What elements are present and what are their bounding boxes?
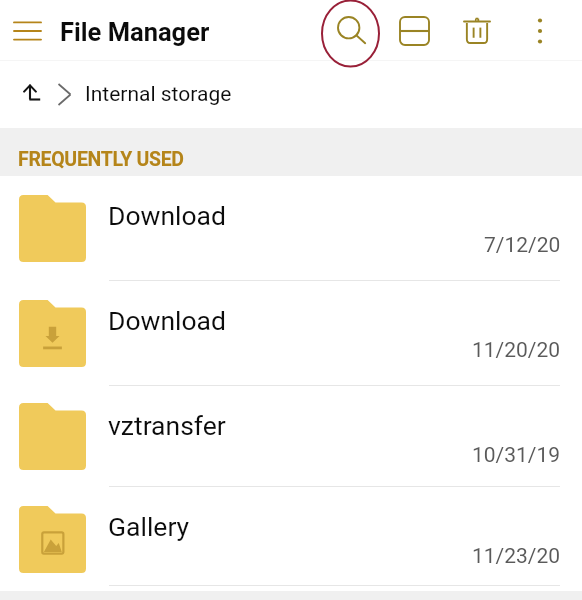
button[interactable]: Download <box>0 281 582 386</box>
button[interactable]: Search <box>320 0 380 67</box>
button[interactable]: Internal storage <box>81 72 233 116</box>
staticText: Download <box>108 305 226 336</box>
button[interactable]: Split view <box>392 8 436 53</box>
staticText: vztransfer <box>108 410 226 441</box>
staticText: FREQUENTLY USED <box>18 148 184 171</box>
button[interactable]: vztransfer <box>0 386 582 487</box>
staticText: Download <box>108 200 226 231</box>
staticText: Gallery <box>108 511 190 542</box>
button[interactable]: Gallery <box>0 487 582 586</box>
staticText: 7/12/20 <box>484 233 561 258</box>
button[interactable]: Download <box>0 176 582 281</box>
staticText: File Manager <box>60 17 210 47</box>
staticText: 11/23/20 <box>472 544 561 569</box>
button[interactable]: Menu <box>9 8 46 53</box>
staticText: Internal storage <box>85 82 232 107</box>
staticText: 11/20/20 <box>472 338 561 363</box>
button[interactable]: Delete <box>455 8 499 53</box>
staticText: 10/31/19 <box>472 443 561 468</box>
button[interactable]: More options <box>518 8 562 53</box>
button[interactable]: Up one level <box>9 72 53 116</box>
